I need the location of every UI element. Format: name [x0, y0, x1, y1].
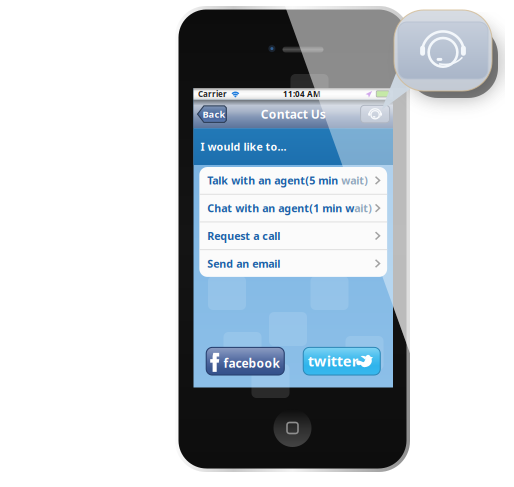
staticText: Chat with an agent(1 min w: [207, 201, 354, 215]
staticText: Contact Us: [261, 106, 326, 122]
staticText: 11:04 AM: [283, 89, 321, 99]
staticText: ait): [354, 201, 372, 215]
button[interactable]: Talk with an agent(5 min: [199, 167, 387, 194]
staticText: Back: [202, 108, 225, 120]
staticText: Send an email: [207, 256, 280, 271]
staticText: I would like to...: [200, 140, 286, 154]
button[interactable]: Back: [197, 105, 227, 123]
staticText: Talk with an agent(5 min: [207, 173, 341, 187]
staticText: facebook: [223, 355, 279, 371]
button[interactable]: Chat with an agent(1 min w: [199, 195, 387, 221]
staticText: Carrier: [198, 89, 227, 99]
button[interactable]: Request a call: [199, 222, 387, 249]
button[interactable]: Twitter: [303, 347, 380, 375]
button[interactable]: Send an email: [199, 250, 387, 277]
button[interactable]: Facebook: [206, 347, 284, 375]
button[interactable]: Contact support: [361, 105, 390, 123]
staticText: Request a call: [207, 229, 280, 243]
staticText: twitter: [308, 351, 359, 370]
staticText: wait): [341, 173, 368, 187]
